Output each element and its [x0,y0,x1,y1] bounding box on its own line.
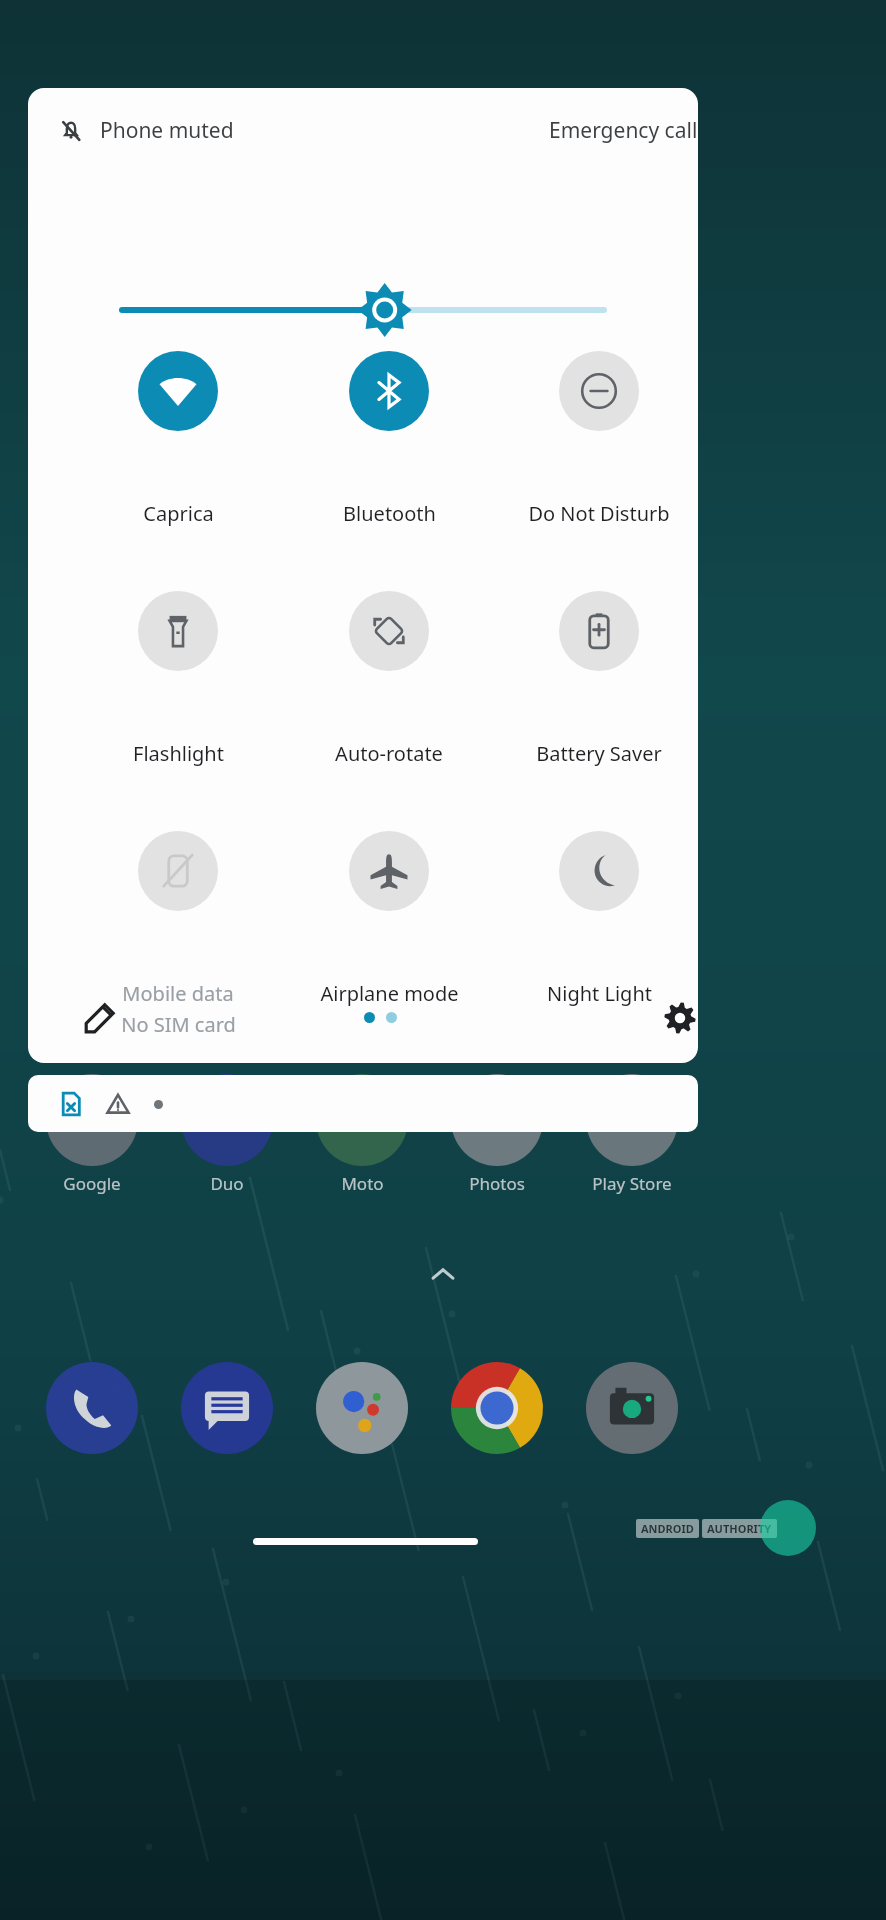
button[interactable] [349,591,429,671]
button[interactable]: Emergency call [549,116,698,145]
button[interactable]: Google [22,1172,162,1195]
staticText: Night Light [547,980,652,1007]
button[interactable]: Airplane mode [284,980,494,1007]
staticText: Moto [341,1172,384,1195]
button[interactable]: Battery Saver [494,740,698,767]
button[interactable] [349,831,429,911]
staticText: Google [63,1172,121,1195]
button[interactable]: Messages [181,1362,273,1454]
staticText: Play Store [592,1172,672,1195]
staticText: Caprica [143,500,214,527]
staticText: Flashlight [133,740,224,767]
button[interactable] [559,351,639,431]
button[interactable]: Assistant [316,1362,408,1454]
button[interactable] [138,591,218,671]
button[interactable]: Camera [586,1362,678,1454]
button[interactable]: Night Light [494,980,698,1007]
staticText: Emergency call [549,116,698,145]
button[interactable] [138,831,218,911]
button[interactable]: Duo [157,1172,297,1195]
button[interactable] [28,1075,698,1132]
button[interactable]: Open app drawer [413,1245,473,1305]
button[interactable]: Mobile data [73,980,283,1038]
button[interactable]: Flashlight [73,740,283,767]
button[interactable]: Do Not Disturb [494,500,698,527]
button[interactable]: Photos [427,1172,567,1195]
staticText: Airplane mode [320,980,459,1007]
staticText: Photos [469,1172,525,1195]
button[interactable] [559,591,639,671]
staticText: No SIM card [121,1011,236,1038]
button[interactable]: Edit tiles [70,988,130,1048]
button[interactable]: Phone muted [58,116,234,145]
staticText: Do Not Disturb [528,500,670,527]
button[interactable]: Settings [650,988,698,1048]
staticText: Auto-rotate [335,740,443,767]
button[interactable]: Caprica [73,500,283,527]
button[interactable]: Bluetooth [284,500,494,527]
staticText: Duo [210,1172,244,1195]
button[interactable]: Play Store [562,1172,702,1195]
button[interactable]: Brightness [94,270,632,350]
staticText: Bluetooth [343,500,436,527]
button[interactable] [559,831,639,911]
staticText: Mobile data [122,980,234,1007]
button[interactable]: Chrome [451,1362,543,1454]
staticText: Phone muted [100,116,234,145]
button[interactable] [138,351,218,431]
button[interactable]: Phone [46,1362,138,1454]
button[interactable] [349,351,429,431]
staticText: AUTHORITY [707,1521,772,1536]
button[interactable]: Moto [292,1172,432,1195]
button[interactable]: Auto-rotate [284,740,494,767]
staticText: Battery Saver [536,740,662,767]
staticText: ANDROID [641,1521,694,1536]
